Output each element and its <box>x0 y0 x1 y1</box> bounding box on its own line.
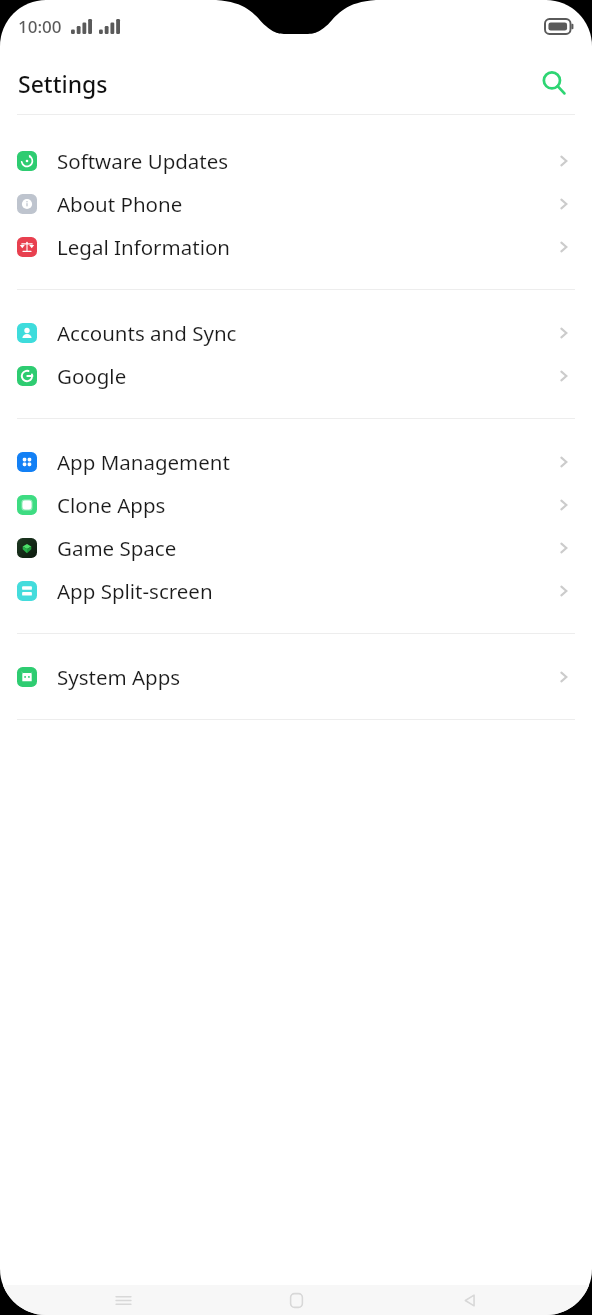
button[interactable]: Accounts and Sync <box>0 311 592 354</box>
button[interactable]: Software Updates <box>0 139 592 182</box>
button[interactable]: About Phone <box>0 182 592 225</box>
button[interactable]: Search <box>532 61 576 105</box>
button[interactable]: Home <box>210 1285 383 1315</box>
staticText: Software Updates <box>57 147 554 175</box>
staticText: Settings <box>18 68 108 99</box>
button[interactable]: Game Space <box>0 526 592 569</box>
staticText: Google <box>57 362 554 390</box>
button[interactable]: App Management <box>0 440 592 483</box>
staticText: App Management <box>57 448 554 476</box>
button[interactable]: Recent apps <box>36 1285 210 1315</box>
button[interactable]: Back <box>383 1285 556 1315</box>
button[interactable]: System Apps <box>0 655 592 698</box>
staticText: Legal Information <box>57 233 554 261</box>
staticText: Clone Apps <box>57 491 554 519</box>
staticText: Game Space <box>57 534 554 562</box>
button[interactable]: Google <box>0 354 592 397</box>
button[interactable]: Legal Information <box>0 225 592 268</box>
staticText: 10:00 <box>18 15 62 38</box>
staticText: About Phone <box>57 190 554 218</box>
button[interactable]: App Split-screen <box>0 569 592 612</box>
staticText: App Split-screen <box>57 577 554 605</box>
staticText: Accounts and Sync <box>57 319 554 347</box>
button[interactable]: Clone Apps <box>0 483 592 526</box>
staticText: System Apps <box>57 663 554 691</box>
